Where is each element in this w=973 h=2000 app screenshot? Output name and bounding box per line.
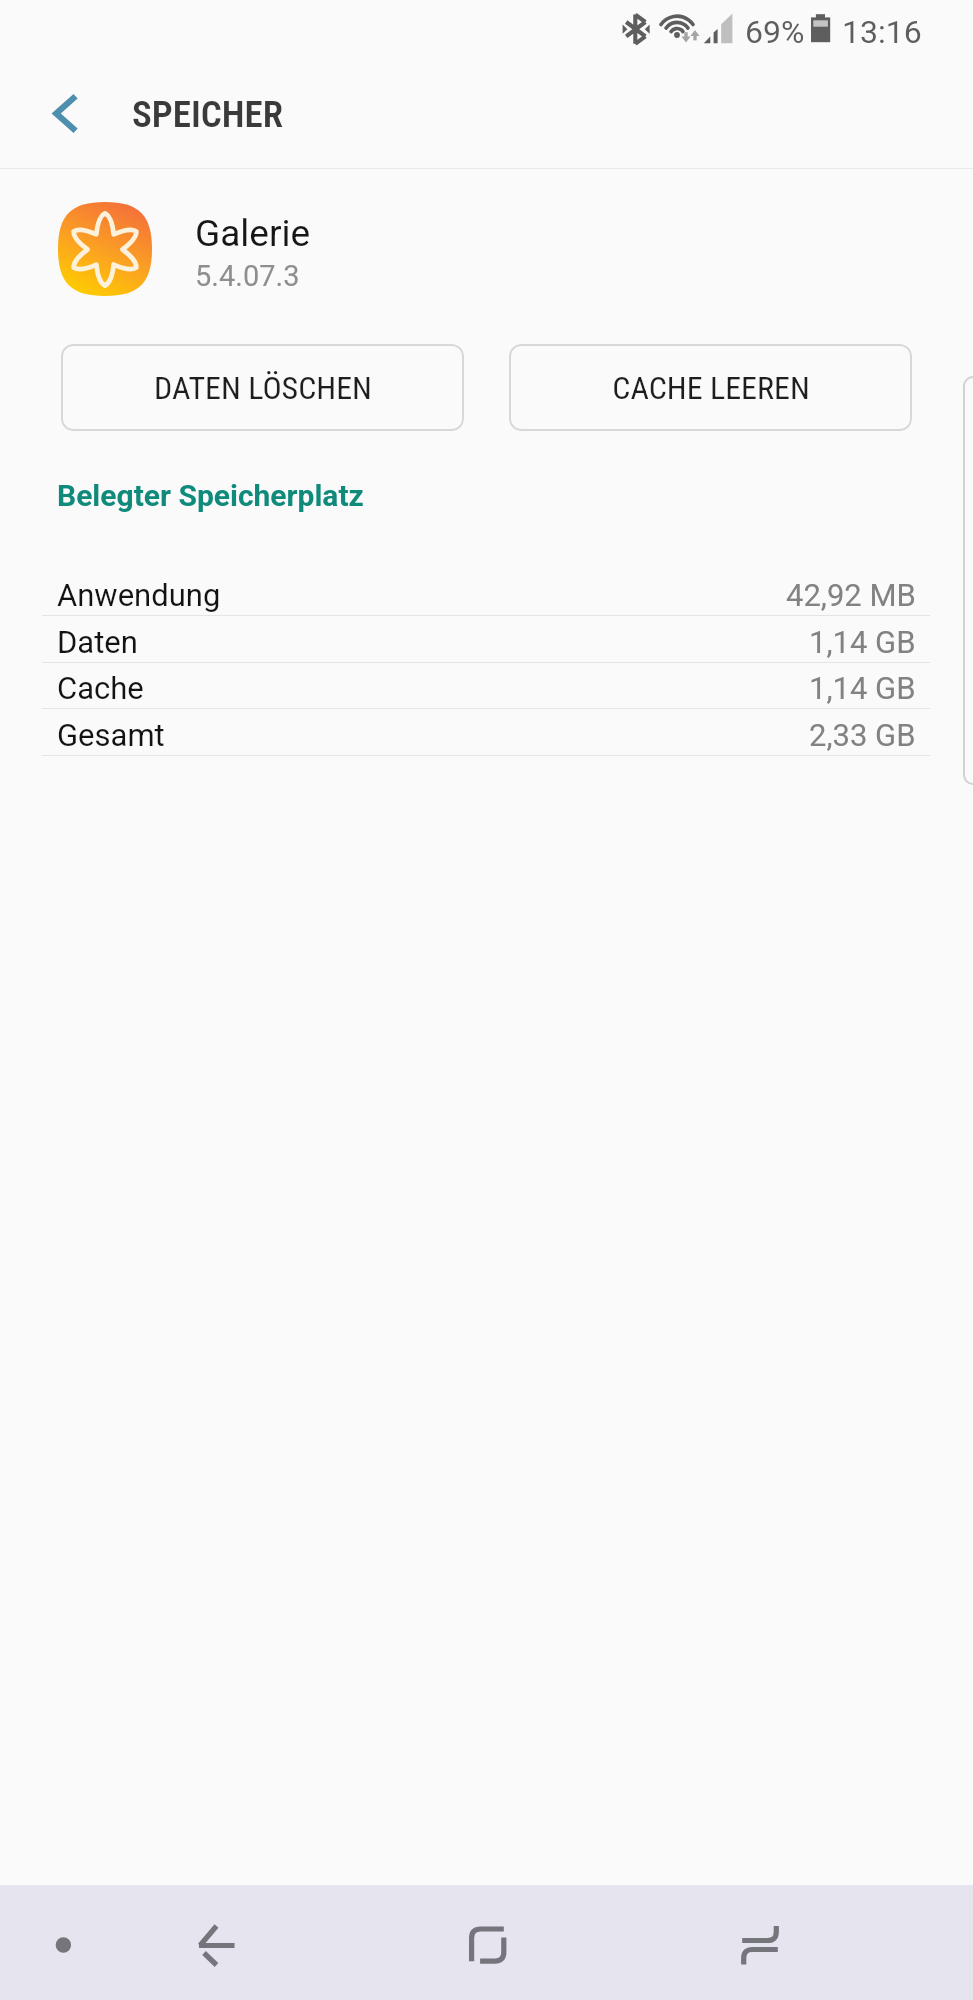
staticText: 1,14 GB: [809, 624, 916, 660]
button[interactable]: More options: [0, 1885, 135, 2000]
button[interactable]: Home: [406, 1885, 569, 2000]
staticText: 1,14 GB: [809, 670, 916, 706]
button[interactable]: Gesamt: [0, 709, 973, 756]
button[interactable]: Daten: [0, 616, 973, 663]
staticText: 2,33 GB: [809, 717, 916, 753]
button[interactable]: CACHE LEEREN: [509, 344, 912, 431]
staticText: Anwendung: [57, 577, 221, 613]
button[interactable]: Anwendung: [0, 569, 973, 616]
staticText: Gesamt: [57, 717, 165, 753]
button[interactable]: Recent apps: [675, 1885, 973, 2000]
button[interactable]: Cache: [0, 662, 973, 709]
staticText: 5.4.07.3: [195, 259, 300, 293]
staticText: CACHE LEEREN: [612, 369, 810, 407]
button[interactable]: Back: [135, 1885, 339, 2000]
staticText: SPEICHER: [132, 93, 284, 136]
staticText: Cache: [57, 670, 144, 706]
staticText: 69%: [745, 13, 805, 51]
staticText: 42,92 MB: [786, 577, 916, 613]
staticText: Galerie: [195, 212, 311, 255]
staticText: 13:16: [842, 13, 922, 51]
staticText: DATEN LÖSCHEN: [154, 369, 372, 407]
staticText: Daten: [57, 624, 138, 660]
button[interactable]: Navigate up: [22, 74, 108, 160]
button[interactable]: DATEN LÖSCHEN: [61, 344, 464, 431]
staticText: Belegter Speicherplatz: [57, 478, 364, 513]
